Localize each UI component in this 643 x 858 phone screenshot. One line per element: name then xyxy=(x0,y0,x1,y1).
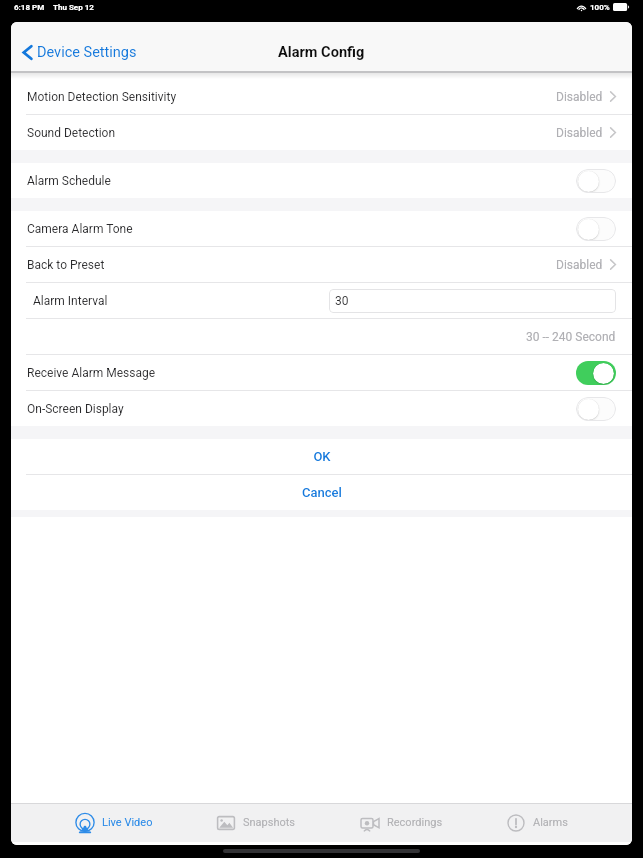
button[interactable]: 30 xyxy=(329,289,616,313)
staticText: OK xyxy=(313,449,331,464)
staticText: Disabled xyxy=(556,258,603,272)
other: Off xyxy=(576,217,616,241)
button[interactable]: Back xyxy=(22,32,137,72)
staticText: 30 -​- 240 Second xyxy=(526,330,616,344)
other: On xyxy=(576,361,616,385)
staticText: 30 xyxy=(335,294,349,308)
staticText: Disabled xyxy=(556,90,603,104)
button[interactable]: Cancel xyxy=(11,475,632,510)
button[interactable]: Sound Detection xyxy=(11,115,632,150)
button[interactable]: Alarm Schedule xyxy=(11,163,632,198)
button[interactable]: OK xyxy=(11,439,632,474)
staticText: Alarms xyxy=(533,816,568,829)
staticText: Alarm Schedule xyxy=(27,174,111,188)
staticText: 6:18 PM xyxy=(14,3,45,12)
staticText: Sound Detection xyxy=(27,126,116,140)
staticText: 100% xyxy=(590,3,610,12)
button[interactable]: Live Video xyxy=(75,803,153,842)
button[interactable]: Motion Detection Sensitivity xyxy=(11,79,632,114)
button[interactable]: Receive Alarm Message xyxy=(11,355,632,390)
staticText: Motion Detection Sensitivity xyxy=(27,90,177,104)
staticText: Recordings xyxy=(387,816,443,829)
other: Off xyxy=(576,169,616,193)
staticText: Back to Preset xyxy=(27,258,105,272)
other: Battery xyxy=(613,3,629,11)
staticText: Thu Sep 12 xyxy=(53,3,94,12)
staticText: Alarm Interval xyxy=(33,294,108,308)
other: Back xyxy=(22,43,33,62)
button[interactable]: Alarms xyxy=(506,803,568,842)
button[interactable]: Camera Alarm Tone xyxy=(11,211,632,246)
other: Off xyxy=(576,397,616,421)
other: Wi-Fi xyxy=(577,4,586,11)
staticText: Camera Alarm Tone xyxy=(27,222,133,236)
staticText: Cancel xyxy=(302,485,342,500)
button[interactable]: Back to Preset xyxy=(11,247,632,282)
staticText: Device Settings xyxy=(37,44,137,61)
staticText: Receive Alarm Message xyxy=(27,366,156,380)
staticText: Snapshots xyxy=(243,816,296,829)
button[interactable]: On-Screen Display xyxy=(11,391,632,426)
staticText: Disabled xyxy=(556,126,603,140)
staticText: Live Video xyxy=(102,816,153,829)
staticText: Alarm Config xyxy=(278,43,365,60)
staticText: On-Screen Display xyxy=(27,402,124,416)
button[interactable]: Snapshots xyxy=(216,803,296,842)
button[interactable]: Recordings xyxy=(360,803,443,842)
